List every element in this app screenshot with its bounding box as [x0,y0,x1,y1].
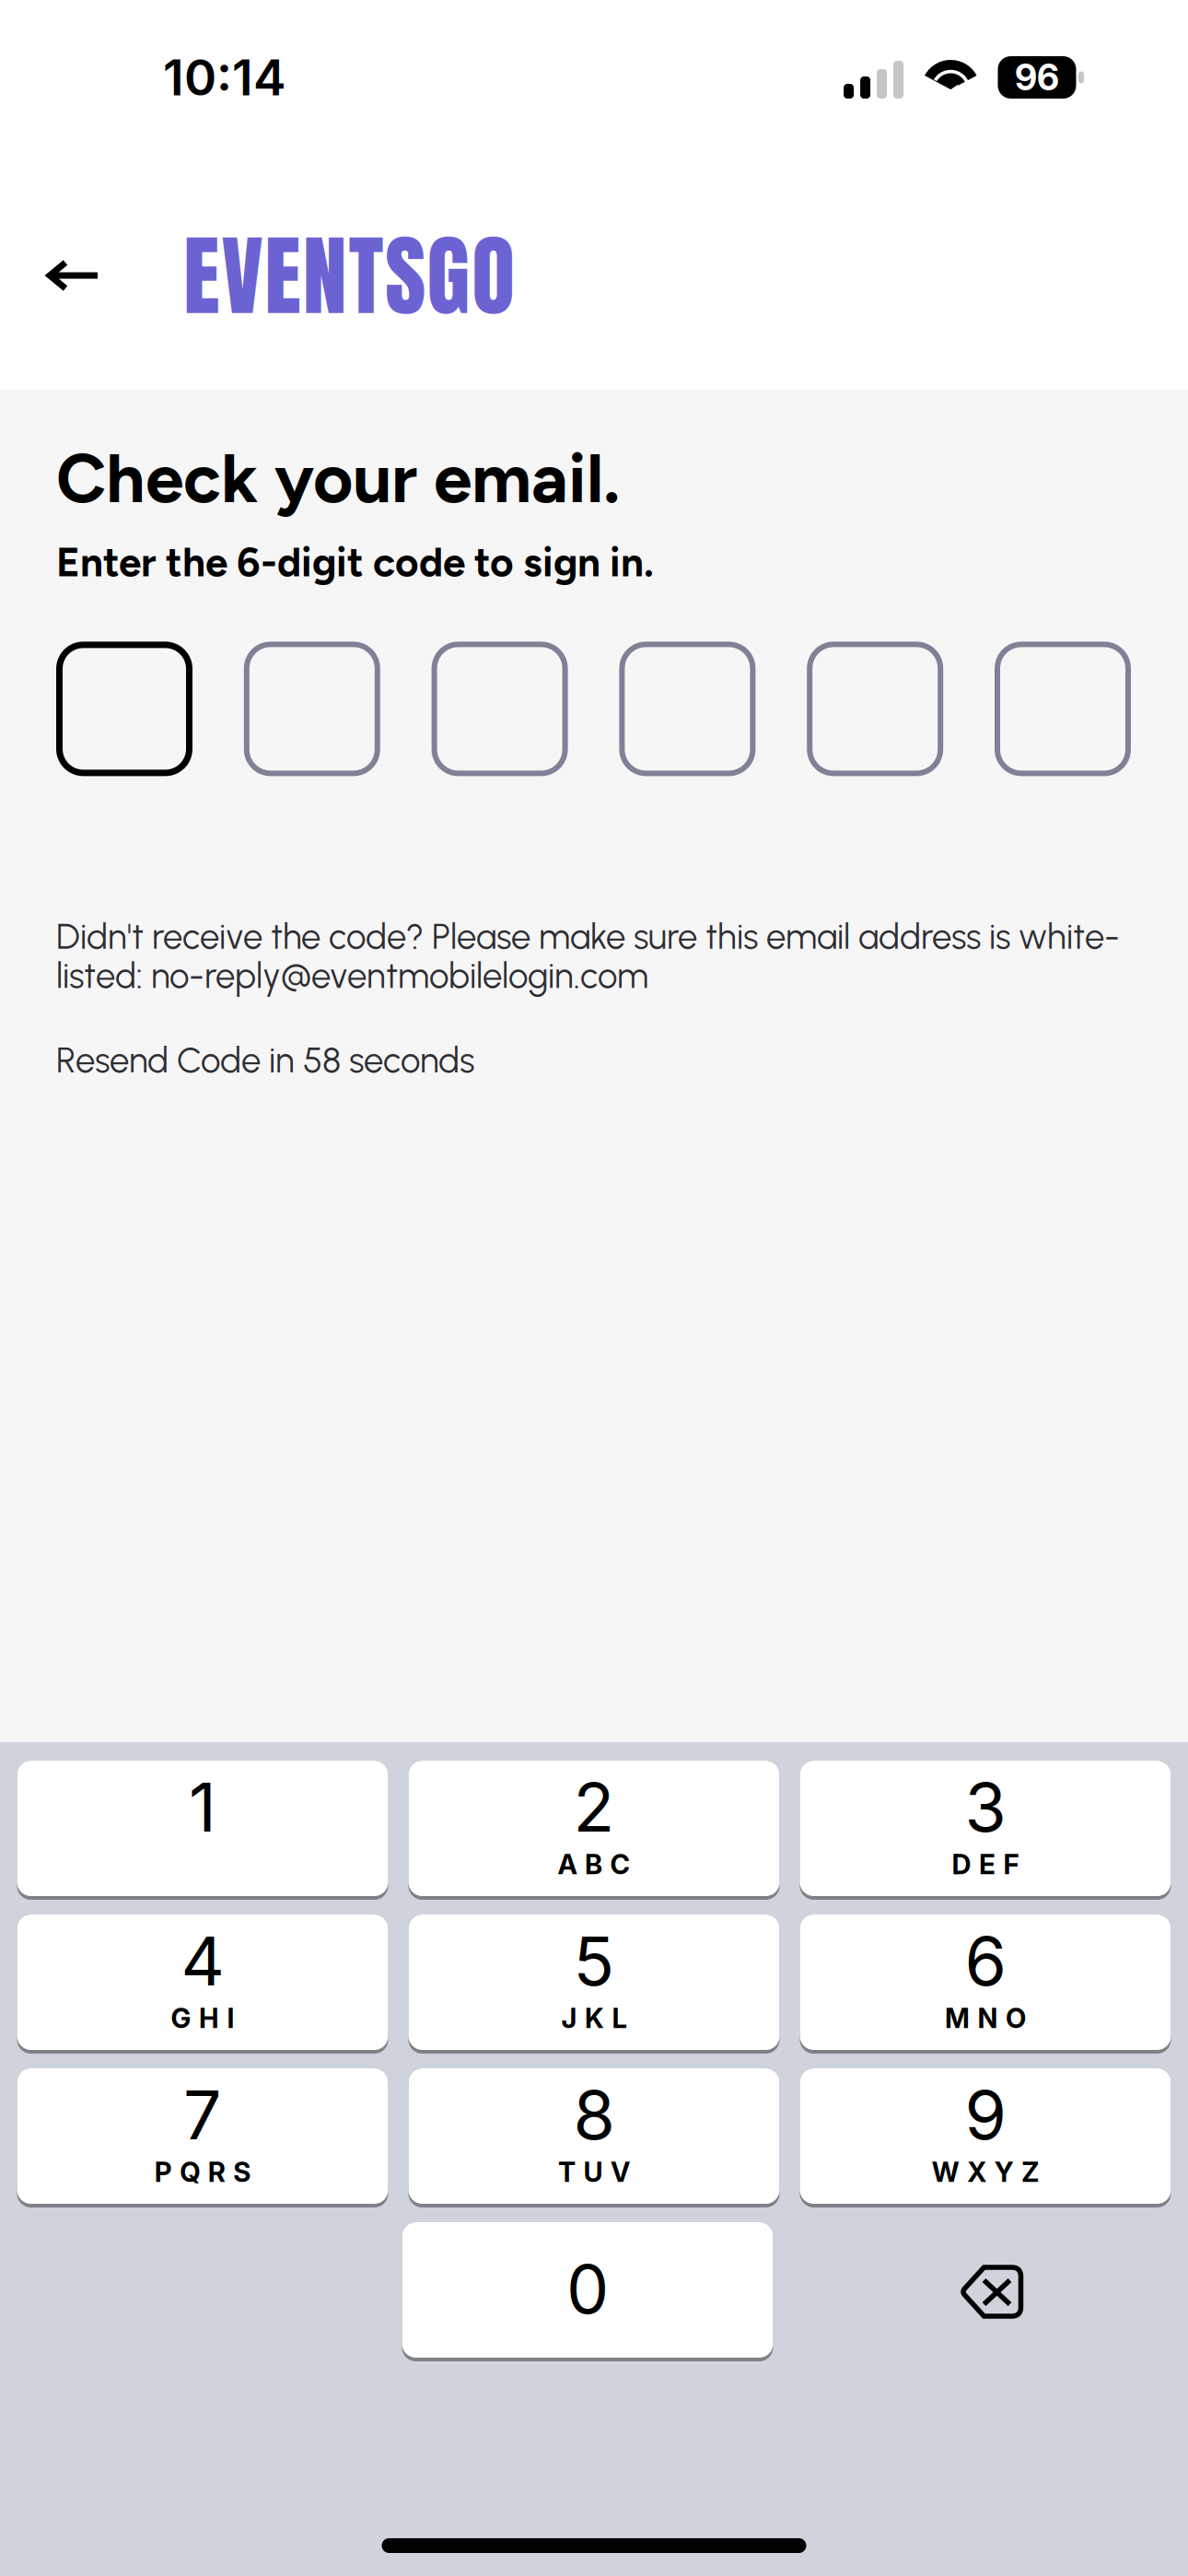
staticText: ABC [558,1848,630,1881]
button[interactable]: 2 [408,1761,780,1900]
staticText: 10:14 [163,48,286,107]
staticText: 2 [573,1766,615,1848]
button[interactable]: 7 [17,2068,388,2207]
staticText: 96 [1015,56,1059,99]
staticText: 8 [573,2074,615,2156]
staticText: Resend Code in 58 seconds [56,1039,474,1081]
button[interactable]: 8 [408,2068,780,2207]
staticText: DEF [952,1848,1019,1881]
staticText: WXYZ [932,2156,1039,2188]
staticText: 1 [189,1766,216,1848]
staticText: 7 [183,2074,222,2156]
button[interactable]: 0 [402,2222,773,2361]
staticText: EVENTSGO [183,209,515,342]
staticText: MNO [945,2002,1026,2034]
button[interactable]: 6 [800,1914,1171,2054]
button[interactable]: 3 [800,1761,1171,1900]
button[interactable]: Back [19,228,128,323]
staticText: 5 [573,1920,615,2002]
staticText: 6 [965,1920,1006,2002]
staticText: Didn't receive the code? Please make sur… [56,915,1120,997]
staticText: 3 [965,1766,1006,1848]
staticText: 0 [566,2248,609,2330]
staticText: Check your email. [56,437,621,519]
button[interactable]: 4 [17,1914,388,2054]
button[interactable]: Resend Code in 58 seconds [56,1039,474,1081]
button[interactable]: Delete [793,2222,1177,2361]
button[interactable]: 5 [408,1914,780,2054]
button[interactable]: 9 [800,2068,1171,2207]
staticText: GHI [171,2002,234,2034]
staticText: TUV [558,2156,630,2188]
staticText: Enter the 6-digit code to sign in. [56,538,654,586]
staticText: PQRS [155,2156,251,2188]
staticText: 9 [965,2074,1006,2156]
staticText: JKL [561,2002,627,2034]
staticText: 4 [181,1920,224,2002]
button[interactable]: 1 [17,1761,388,1900]
